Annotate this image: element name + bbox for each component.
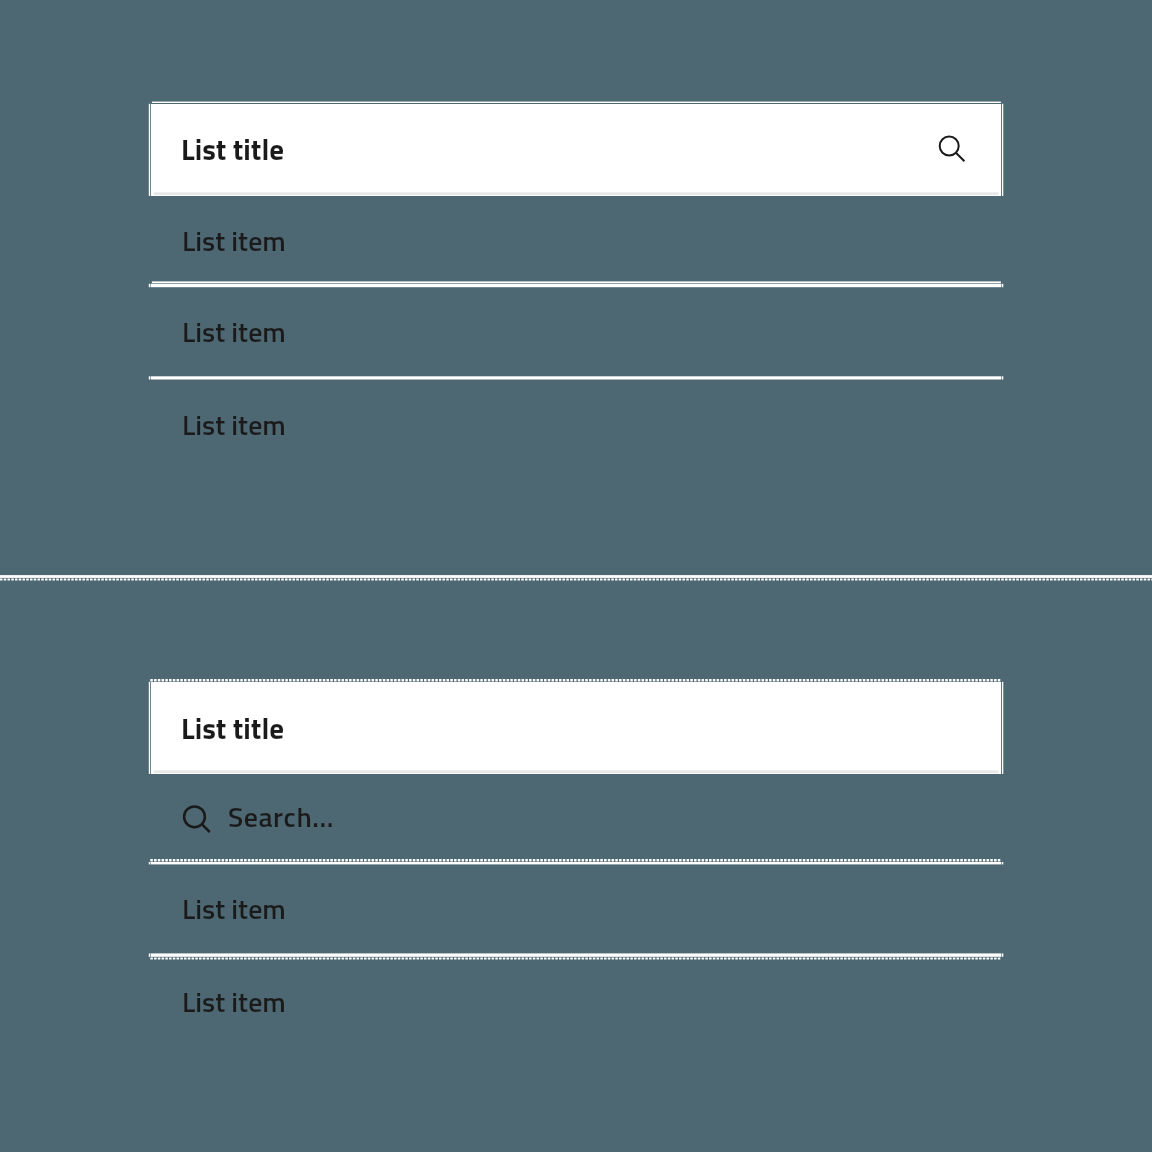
staticText: List item [182,403,286,446]
button[interactable]: Search... [0,774,1152,859]
button[interactable]: Search [923,120,979,176]
staticText: List title [181,706,285,750]
button[interactable]: List item [0,287,1152,376]
staticText: List item [182,980,286,1023]
staticText: List item [182,310,286,353]
button[interactable]: List item [0,864,1152,952]
button[interactable]: List item [0,196,1152,287]
staticText: List title [181,127,285,171]
staticText: Search... [228,795,334,838]
staticText: List item [182,219,286,262]
button[interactable]: List item [0,379,1152,470]
button[interactable]: List item [0,957,1152,1046]
button[interactable]: List title [151,682,1001,774]
staticText: List item [182,887,286,930]
button[interactable]: List title [151,104,1001,196]
